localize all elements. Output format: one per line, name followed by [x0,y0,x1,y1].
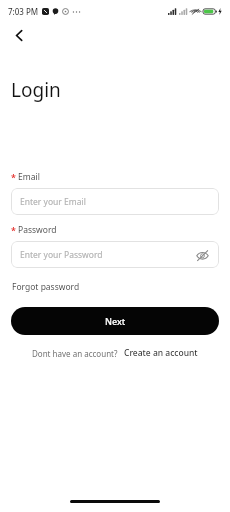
button[interactable]: Forgot password [11,279,81,295]
staticText: 7:03 PM [8,6,39,17]
staticText: Next [105,315,126,327]
staticText: Password [18,224,57,236]
staticText: Forgot password [12,281,80,293]
staticText: * [11,171,16,183]
staticText: Email [18,171,40,183]
staticText: Dont have an account? [32,348,118,359]
staticText: Enter your Password [20,249,194,261]
button[interactable]: Back [6,22,32,48]
button[interactable]: Show password [194,247,210,263]
button[interactable]: Enter your Password [11,241,219,268]
staticText: Login [11,77,61,103]
staticText: Create an account [124,347,198,359]
staticText: * [11,224,16,236]
button[interactable]: Next [11,307,219,335]
button[interactable]: Create an account [123,345,199,361]
staticText: Enter your Email [20,196,210,208]
button[interactable]: Enter your Email [11,188,219,215]
